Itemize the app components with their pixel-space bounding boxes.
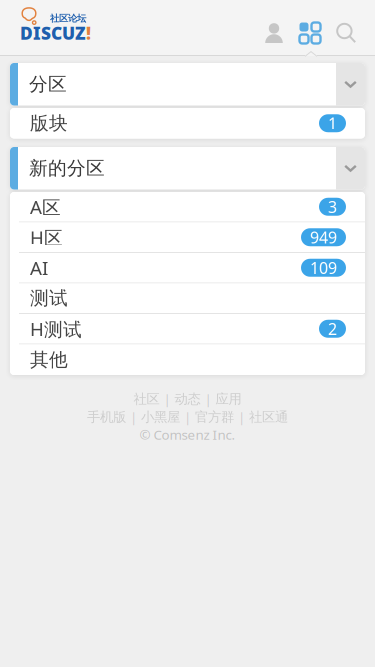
staticText: H测试 — [30, 316, 82, 341]
staticText: | — [184, 408, 191, 426]
staticText: 官方群 — [195, 409, 234, 425]
staticText: | — [238, 408, 245, 426]
staticText: 949 — [310, 227, 337, 248]
staticText: 应用 — [215, 391, 241, 407]
staticText: 手机版 — [87, 409, 126, 425]
staticText: 109 — [310, 257, 337, 278]
button[interactable]: My account — [256, 14, 292, 52]
button[interactable]: 版块 — [10, 108, 365, 138]
staticText: 社区 — [133, 391, 159, 407]
staticText: 分区 — [29, 73, 67, 96]
staticText: 动态 — [174, 391, 200, 407]
button[interactable]: Forums — [292, 14, 328, 52]
button[interactable]: 动态 — [174, 391, 200, 407]
button[interactable]: 社区通 — [249, 409, 288, 425]
staticText: | — [130, 408, 137, 426]
button[interactable]: 分区 — [10, 63, 365, 105]
staticText: 社区通 — [249, 409, 288, 425]
staticText: 2 — [328, 318, 337, 339]
staticText: ! — [86, 21, 91, 44]
button[interactable]: Search — [328, 14, 364, 52]
button[interactable]: 新的分区 — [10, 147, 365, 189]
button[interactable]: 官方群 — [195, 409, 234, 425]
staticText: | — [204, 390, 211, 408]
button[interactable]: 小黑屋 — [141, 409, 180, 425]
button[interactable]: 其他 — [10, 344, 365, 375]
staticText: 其他 — [30, 348, 68, 371]
staticText: | — [163, 390, 170, 408]
button[interactable]: H区 — [10, 222, 365, 253]
button[interactable]: 测试 — [10, 283, 365, 314]
staticText: © Comsenz Inc. — [139, 426, 235, 443]
staticText: 3 — [328, 196, 337, 217]
button[interactable]: 社区 — [133, 391, 159, 407]
staticText: H区 — [30, 225, 63, 250]
staticText: A区 — [30, 194, 61, 219]
button[interactable]: A区 — [10, 192, 365, 222]
staticText: AI — [30, 255, 48, 280]
button[interactable]: AI — [10, 253, 365, 283]
staticText: 1 — [328, 113, 337, 134]
staticText: 社区论坛 — [50, 12, 86, 24]
button[interactable]: H测试 — [10, 314, 365, 344]
staticText: 版块 — [30, 112, 68, 135]
staticText: 新的分区 — [29, 157, 105, 180]
staticText: 测试 — [30, 287, 68, 310]
button[interactable]: 手机版 — [87, 409, 126, 425]
staticText: DISCUZ — [20, 21, 86, 44]
staticText: 小黑屋 — [141, 409, 180, 425]
button[interactable]: 应用 — [215, 391, 241, 407]
